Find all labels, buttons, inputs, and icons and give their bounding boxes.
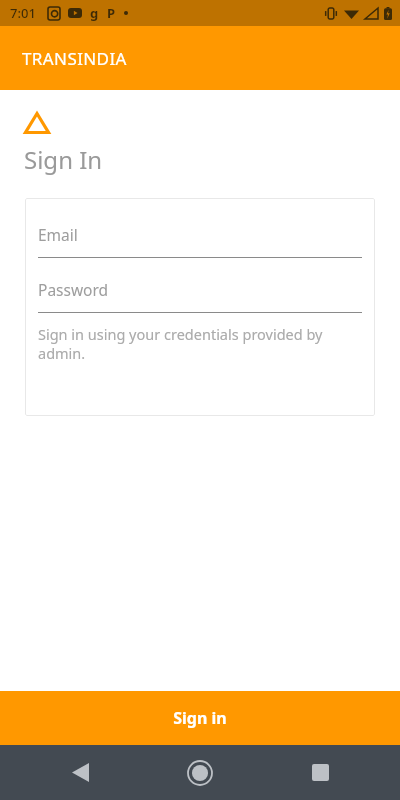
- staticText: Sign in: [173, 707, 227, 729]
- other: TransIndia logo: [24, 112, 50, 134]
- staticText: Sign in using your credentials provided …: [38, 324, 362, 363]
- staticText: g: [90, 4, 99, 22]
- button[interactable]: Email: [38, 224, 362, 258]
- staticText: P: [107, 4, 116, 22]
- button[interactable]: Recent apps: [260, 745, 380, 800]
- button[interactable]: Password: [38, 279, 362, 313]
- button[interactable]: Back: [20, 745, 140, 800]
- staticText: Sign In: [24, 143, 103, 176]
- staticText: TRANSINDIA: [22, 47, 127, 70]
- staticText: Password: [38, 279, 109, 300]
- staticText: 7:01: [10, 4, 36, 22]
- staticText: Email: [38, 224, 78, 245]
- button[interactable]: Home: [140, 745, 260, 800]
- button[interactable]: Sign in: [0, 691, 400, 745]
